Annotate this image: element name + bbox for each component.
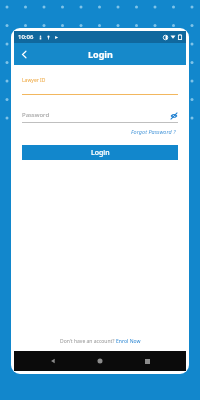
button[interactable]: Forgot Password ?	[129, 126, 178, 137]
staticText: 10:06	[18, 33, 34, 41]
button[interactable]: Home	[92, 353, 108, 369]
button[interactable]: Enrol Now	[116, 338, 141, 345]
button[interactable]: Lawyer ID	[22, 77, 178, 95]
button[interactable]: Back	[14, 44, 34, 64]
staticText: Don't have an account?	[60, 338, 116, 345]
button[interactable]: Back	[45, 353, 61, 369]
staticText: Login	[91, 148, 110, 158]
staticText: Password	[22, 111, 50, 119]
button[interactable]: Recent apps	[139, 353, 155, 369]
button[interactable]: Login	[22, 145, 178, 160]
button[interactable]: Toggle password visibility	[169, 111, 178, 120]
button[interactable]: Password	[22, 109, 178, 123]
staticText: Lawyer ID	[22, 77, 46, 84]
staticText: Login	[88, 48, 113, 60]
